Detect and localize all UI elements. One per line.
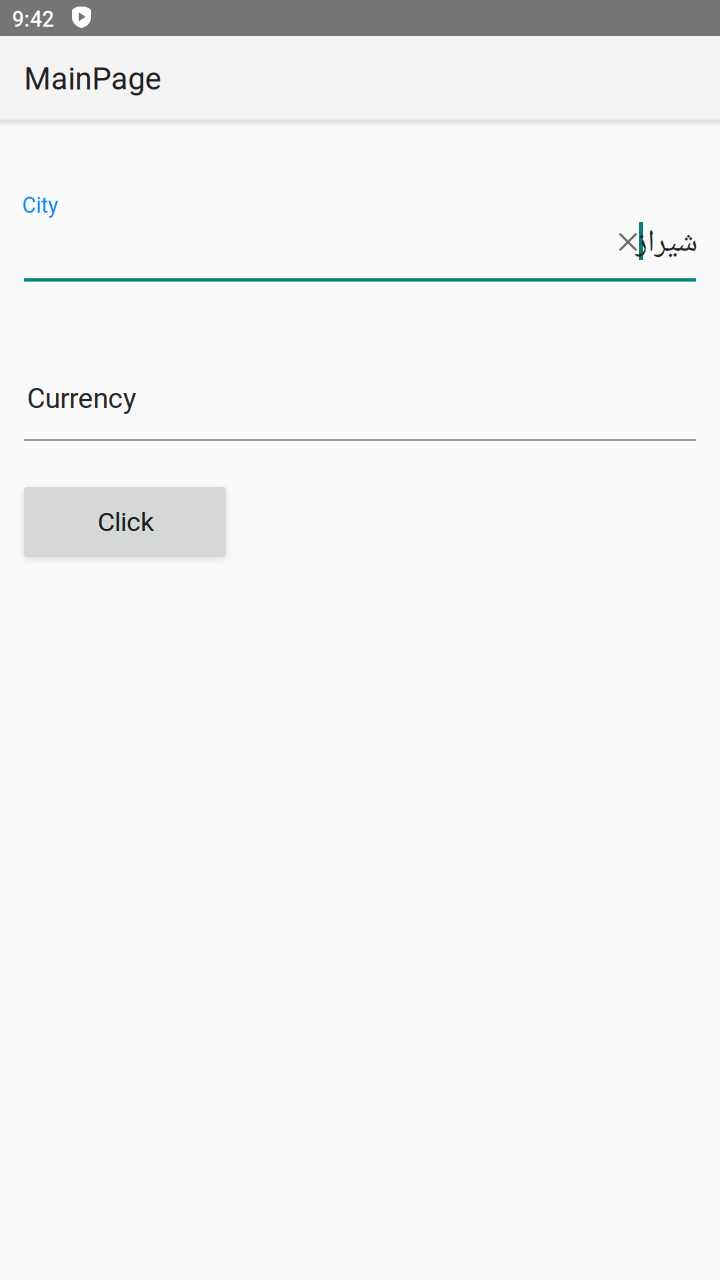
staticText: 9:42 xyxy=(12,7,54,32)
button[interactable]: Currency xyxy=(24,382,696,441)
button[interactable]: Click xyxy=(24,487,226,557)
button[interactable]: Clear text xyxy=(613,218,643,266)
button[interactable]: City xyxy=(24,182,696,282)
staticText: City xyxy=(22,193,58,218)
staticText: Click xyxy=(97,506,154,538)
staticText: شیراز xyxy=(635,218,697,270)
staticText: MainPage xyxy=(24,61,161,97)
staticText: Currency xyxy=(27,382,136,415)
